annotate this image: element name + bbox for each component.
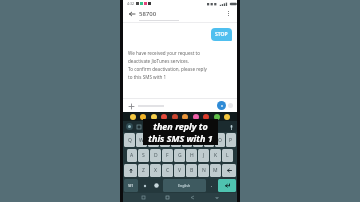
staticText: deactivate JioTunes services. xyxy=(128,58,190,64)
button[interactable]: Emoji xyxy=(193,114,199,120)
button[interactable]: F xyxy=(162,149,173,162)
button[interactable]: English xyxy=(163,179,206,192)
button[interactable]: Add attachment xyxy=(127,102,135,110)
staticText: F xyxy=(166,152,169,159)
staticText: T xyxy=(175,137,178,144)
staticText: S xyxy=(142,152,145,159)
staticText: I xyxy=(208,137,210,144)
staticText: X xyxy=(154,167,157,174)
staticText: R xyxy=(163,137,167,144)
staticText: U xyxy=(196,137,200,144)
button[interactable]: More options xyxy=(224,9,233,18)
button[interactable]: !#1 xyxy=(124,179,138,192)
staticText: D xyxy=(154,152,158,159)
button[interactable]: Emoji xyxy=(130,114,136,120)
button[interactable]: Back xyxy=(127,9,136,18)
button[interactable]: Emoji xyxy=(214,114,220,120)
staticText: L xyxy=(226,152,229,159)
staticText: English xyxy=(178,183,191,188)
button[interactable]: Q xyxy=(124,133,135,147)
button[interactable]: Clipboard xyxy=(136,124,141,129)
button[interactable]: Emoji xyxy=(182,114,188,120)
button[interactable]: Enter xyxy=(218,179,236,192)
button[interactable]: Emoji xyxy=(151,114,157,120)
staticText: N xyxy=(202,167,206,174)
button[interactable]: L xyxy=(222,149,233,162)
staticText: to this SMS with 1 xyxy=(128,74,167,80)
button[interactable]: S xyxy=(138,149,149,162)
button[interactable]: Emoji xyxy=(161,114,167,120)
button[interactable]: Emoji xyxy=(172,114,178,120)
button[interactable]: STOP xyxy=(211,28,232,41)
staticText: !#1 xyxy=(128,183,134,188)
staticText: this SMS with 1 xyxy=(148,132,213,144)
button[interactable]: Emoji xyxy=(203,114,209,120)
button[interactable]: Backspace xyxy=(222,164,236,177)
button[interactable]: Back xyxy=(189,194,196,201)
staticText: G xyxy=(178,152,182,159)
button[interactable]: D xyxy=(150,149,161,162)
button[interactable]: U xyxy=(193,133,203,147)
button[interactable]: E xyxy=(148,133,159,147)
button[interactable]: Emoji xyxy=(224,114,230,120)
staticText: To confirm deactivation, please reply xyxy=(128,66,207,72)
button[interactable]: Send xyxy=(217,101,226,110)
staticText: B xyxy=(190,167,194,174)
button[interactable]: Emoji keyboard xyxy=(151,179,162,192)
button[interactable]: X xyxy=(150,164,161,177)
button[interactable]: C xyxy=(162,164,173,177)
button[interactable]: O xyxy=(215,133,225,147)
button[interactable]: M xyxy=(210,164,221,177)
staticText: E xyxy=(152,137,155,144)
staticText: M xyxy=(213,167,218,174)
button[interactable]: P xyxy=(226,133,236,147)
button[interactable]: T xyxy=(171,133,181,147)
button[interactable]: Y xyxy=(182,133,192,147)
button[interactable]: Settings xyxy=(139,179,150,192)
button[interactable]: B xyxy=(186,164,197,177)
button[interactable]: J xyxy=(198,149,209,162)
button[interactable]: Hide keyboard xyxy=(213,194,220,201)
button[interactable]: A xyxy=(127,149,137,162)
button[interactable]: Keyboard settings xyxy=(126,123,133,130)
staticText: 58700 xyxy=(139,10,157,18)
button[interactable]: W xyxy=(136,133,147,147)
staticText: V xyxy=(178,167,182,174)
button[interactable]: Period xyxy=(207,179,217,192)
staticText: K xyxy=(214,152,218,159)
staticText: J xyxy=(203,152,205,159)
staticText: Q xyxy=(128,137,132,144)
button[interactable]: H xyxy=(186,149,197,162)
staticText: . xyxy=(211,182,213,189)
button[interactable]: I xyxy=(204,133,214,147)
button[interactable]: R xyxy=(160,133,170,147)
button[interactable]: Shift xyxy=(124,164,137,177)
staticText: W xyxy=(139,137,144,144)
button[interactable]: Z xyxy=(138,164,149,177)
button[interactable]: Voice input xyxy=(228,124,234,130)
staticText: A xyxy=(130,152,134,159)
staticText: C xyxy=(166,167,170,174)
button[interactable]: N xyxy=(198,164,209,177)
button[interactable]: V xyxy=(174,164,185,177)
button[interactable]: Recents xyxy=(140,194,147,201)
button[interactable]: Emoji xyxy=(140,114,146,120)
button[interactable]: Home xyxy=(164,194,171,201)
button[interactable]: K xyxy=(210,149,221,162)
staticText: STOP xyxy=(215,31,228,38)
button[interactable]: G xyxy=(174,149,185,162)
staticText: We have received your request to xyxy=(128,50,201,56)
staticText: O xyxy=(218,137,222,144)
staticText: Z xyxy=(142,167,145,174)
staticText: 4:32 xyxy=(127,1,134,6)
staticText: Y xyxy=(186,137,189,144)
staticText: then reply to xyxy=(153,120,208,132)
staticText: P xyxy=(229,137,233,144)
staticText: H xyxy=(190,152,194,159)
